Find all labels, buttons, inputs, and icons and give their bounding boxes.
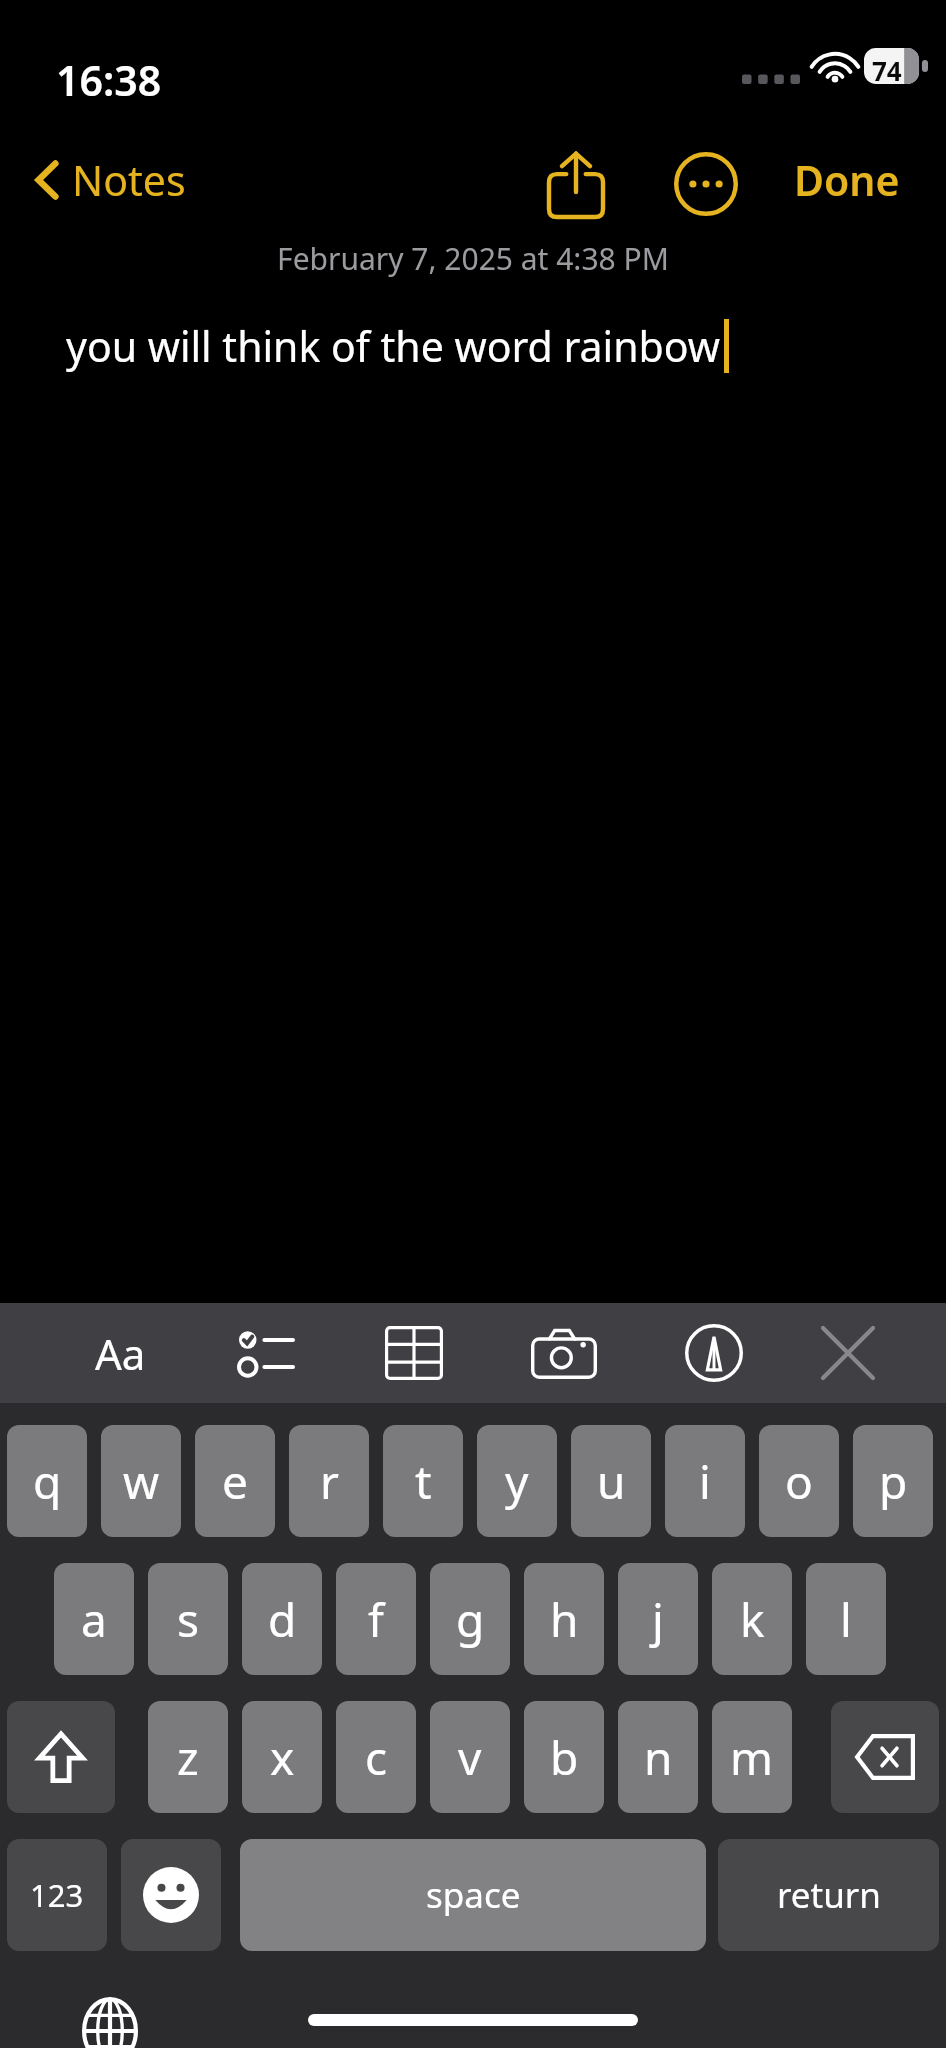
button[interactable]: z bbox=[148, 1701, 228, 1813]
button[interactable]: Close keyboard bbox=[806, 1321, 890, 1385]
staticText: l bbox=[840, 1588, 852, 1651]
button[interactable]: l bbox=[806, 1563, 886, 1675]
staticText: b bbox=[550, 1726, 579, 1789]
button[interactable]: Backspace bbox=[831, 1701, 939, 1813]
staticText: j bbox=[652, 1588, 664, 1651]
button[interactable]: h bbox=[524, 1563, 604, 1675]
staticText: u bbox=[597, 1450, 626, 1513]
staticText: v bbox=[458, 1726, 482, 1789]
button[interactable]: q bbox=[7, 1425, 87, 1537]
button[interactable]: a bbox=[54, 1563, 134, 1675]
button[interactable]: Markup bbox=[672, 1319, 756, 1387]
button[interactable]: return bbox=[718, 1839, 939, 1951]
staticText: m bbox=[730, 1726, 774, 1789]
staticText: x bbox=[270, 1726, 295, 1789]
button[interactable]: space bbox=[240, 1839, 706, 1951]
staticText: s bbox=[177, 1588, 200, 1651]
button[interactable]: p bbox=[853, 1425, 933, 1537]
staticText: i bbox=[699, 1450, 711, 1513]
button[interactable]: o bbox=[759, 1425, 839, 1537]
staticText: z bbox=[177, 1726, 199, 1789]
button[interactable]: Table bbox=[372, 1321, 456, 1385]
button[interactable]: g bbox=[430, 1563, 510, 1675]
button[interactable]: Aa bbox=[74, 1319, 166, 1387]
staticText: February 7, 2025 at 4:38 PM bbox=[0, 238, 946, 279]
button[interactable]: Done bbox=[784, 144, 910, 216]
button[interactable]: c bbox=[336, 1701, 416, 1813]
staticText: 123 bbox=[30, 1874, 84, 1916]
button[interactable]: j bbox=[618, 1563, 698, 1675]
staticText: Notes bbox=[72, 152, 186, 208]
button[interactable]: 123 bbox=[7, 1839, 107, 1951]
staticText: Aa bbox=[95, 1325, 146, 1382]
button[interactable]: t bbox=[383, 1425, 463, 1537]
button[interactable]: Notes bbox=[24, 144, 196, 216]
staticText: Done bbox=[794, 152, 900, 208]
button[interactable]: Checklist bbox=[222, 1321, 306, 1385]
button[interactable]: i bbox=[665, 1425, 745, 1537]
staticText: a bbox=[81, 1588, 107, 1651]
button[interactable]: w bbox=[101, 1425, 181, 1537]
staticText: you will think of the word rainbow bbox=[66, 318, 720, 374]
button[interactable]: y bbox=[477, 1425, 557, 1537]
button[interactable]: n bbox=[618, 1701, 698, 1813]
button[interactable]: b bbox=[524, 1701, 604, 1813]
staticText: g bbox=[456, 1588, 485, 1651]
staticText: k bbox=[740, 1588, 765, 1651]
staticText: o bbox=[785, 1450, 813, 1513]
button[interactable]: Camera bbox=[522, 1321, 606, 1385]
button[interactable]: v bbox=[430, 1701, 510, 1813]
staticText: h bbox=[550, 1588, 579, 1651]
staticText: 74 bbox=[872, 53, 902, 88]
staticText: r bbox=[320, 1450, 339, 1513]
button[interactable]: x bbox=[242, 1701, 322, 1813]
button[interactable]: s bbox=[148, 1563, 228, 1675]
button[interactable]: k bbox=[712, 1563, 792, 1675]
staticText: space bbox=[426, 1871, 521, 1919]
staticText: y bbox=[505, 1450, 529, 1513]
button[interactable]: More options bbox=[656, 134, 756, 234]
staticText: f bbox=[368, 1588, 384, 1651]
staticText: return bbox=[777, 1871, 881, 1919]
button[interactable]: Switch keyboard bbox=[70, 1989, 150, 2048]
button[interactable]: Emoji bbox=[121, 1839, 221, 1951]
button[interactable]: d bbox=[242, 1563, 322, 1675]
staticText: q bbox=[33, 1450, 62, 1513]
staticText: p bbox=[879, 1450, 908, 1513]
button[interactable]: Share bbox=[526, 134, 626, 234]
staticText: 16:38 bbox=[56, 52, 162, 108]
staticText: n bbox=[644, 1726, 673, 1789]
button[interactable]: u bbox=[571, 1425, 651, 1537]
button[interactable]: e bbox=[195, 1425, 275, 1537]
button[interactable]: r bbox=[289, 1425, 369, 1537]
button[interactable]: Shift bbox=[7, 1701, 115, 1813]
button[interactable]: f bbox=[336, 1563, 416, 1675]
button[interactable]: m bbox=[712, 1701, 792, 1813]
staticText: e bbox=[222, 1450, 248, 1513]
staticText: t bbox=[415, 1450, 432, 1513]
staticText: c bbox=[365, 1726, 388, 1789]
staticText: w bbox=[123, 1450, 160, 1513]
staticText: d bbox=[268, 1588, 297, 1651]
